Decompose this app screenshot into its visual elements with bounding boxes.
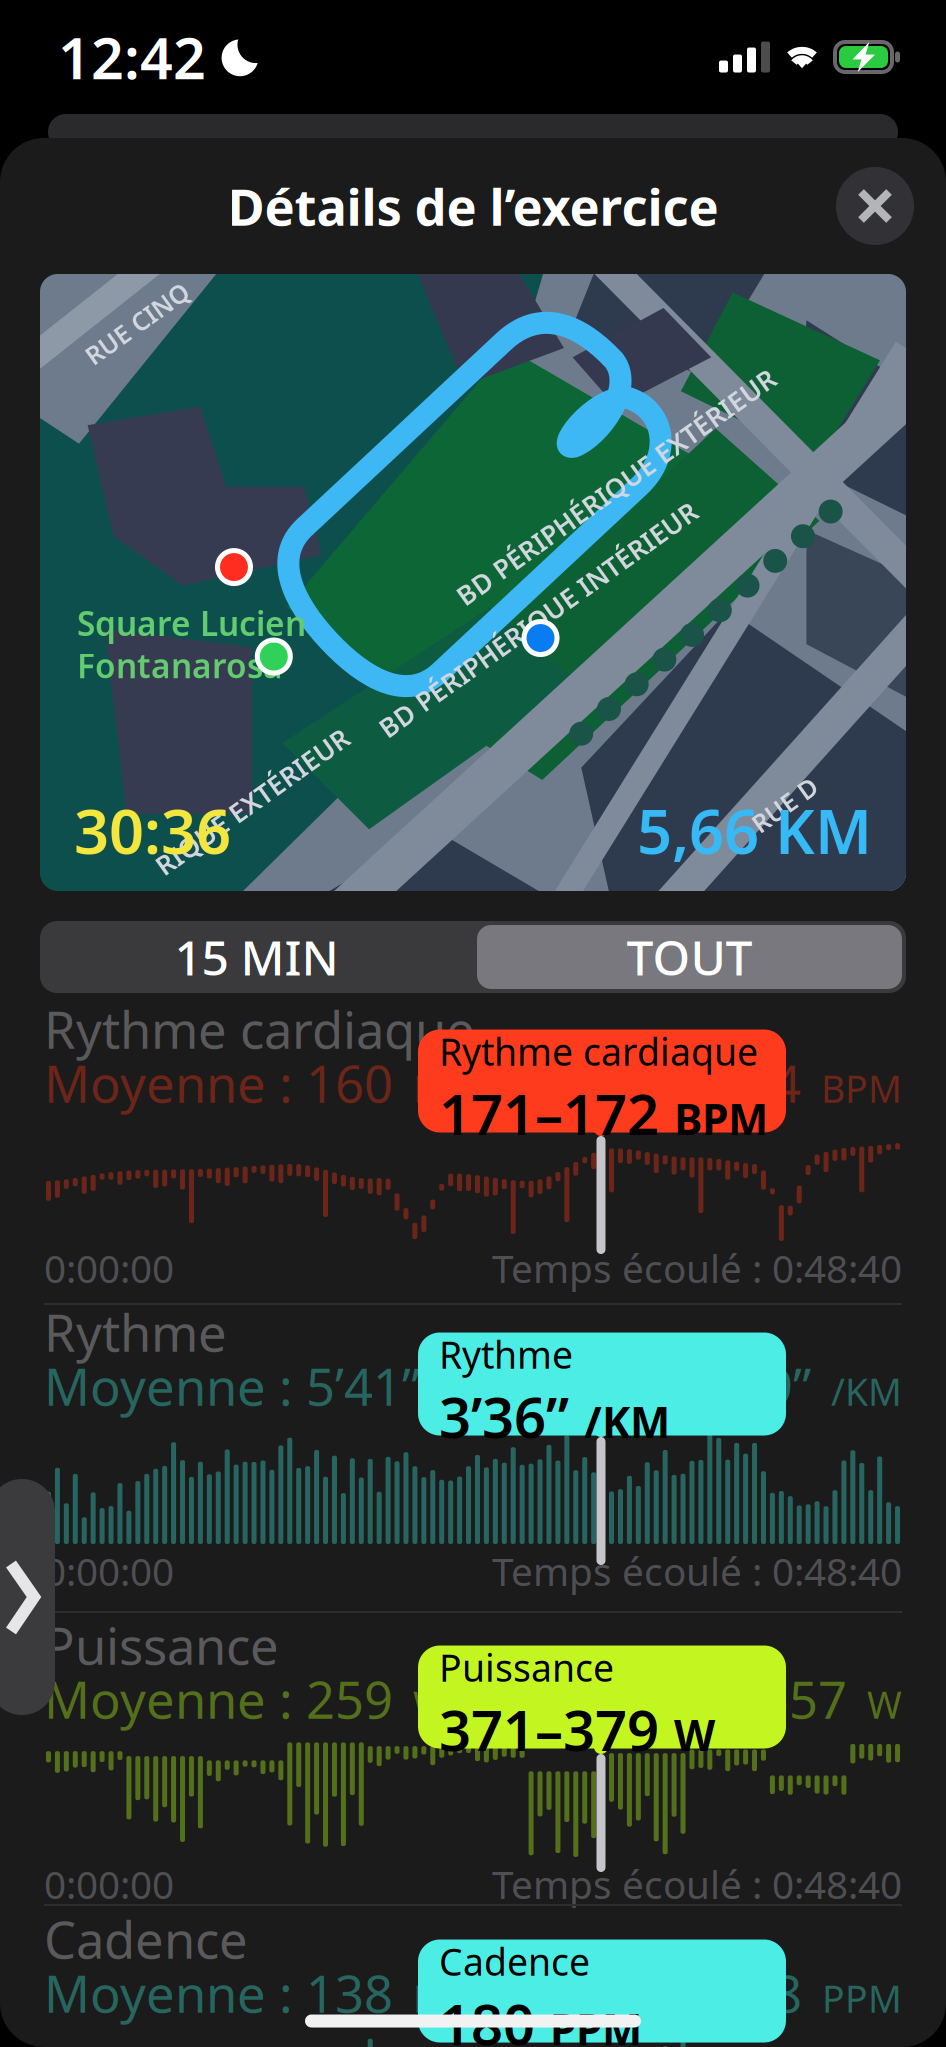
staticText: Moyenne : 5’41”: [44, 1352, 420, 1420]
staticText: 174: [714, 1049, 801, 1117]
staticText: Rythme cardiaque: [44, 995, 475, 1063]
button[interactable]: Fermer: [836, 167, 914, 245]
staticText: RUE D: [747, 788, 822, 821]
staticText: Cadence: [44, 1905, 248, 1973]
staticText: 0:00:00: [44, 1858, 174, 1910]
staticText: PPM: [550, 2000, 642, 2047]
staticText: BPM: [801, 1063, 902, 1113]
staticText: Cadence: [439, 1936, 590, 1986]
staticText: Moyenne : 259: [44, 1665, 393, 1733]
staticText: Rythme: [44, 1298, 227, 1366]
staticText: W: [847, 1679, 902, 1729]
staticText: RIQUE EXTÉRIEUR: [137, 784, 368, 819]
staticText: ’19”: [726, 1352, 811, 1420]
staticText: Square Lucien: [77, 601, 306, 645]
staticText: /KM: [420, 1366, 511, 1416]
staticText: Détails de l’exercice: [227, 172, 718, 240]
staticText: W: [393, 1679, 448, 1729]
staticText: Temps écoulé : 0:48:40: [492, 1858, 902, 1910]
staticText: 371–379: [439, 1692, 659, 1766]
staticText: BPM: [674, 1090, 768, 1147]
staticText: 3’36”: [439, 1379, 569, 1453]
staticText: BPM: [393, 1063, 494, 1113]
staticText: 15 MIN: [174, 925, 338, 989]
staticText: BD PÉRIPHÉRIQUE EXTÉRIEUR: [423, 469, 808, 505]
staticText: –557: [735, 1665, 847, 1733]
staticText: 5,66 KM: [637, 790, 872, 871]
staticText: 171–172: [439, 1076, 659, 1150]
staticText: 12:42: [58, 19, 206, 95]
staticText: 28: [744, 1959, 802, 2027]
staticText: 180: [439, 1986, 535, 2047]
button[interactable]: Ouvrir le panneau: [0, 1479, 55, 1715]
staticText: Fontanarosa: [77, 643, 283, 687]
staticText: /KM: [811, 1366, 902, 1416]
staticText: /KM: [584, 1393, 670, 1450]
staticText: Moyenne : 160: [44, 1049, 393, 1117]
staticText: W: [674, 1706, 715, 1763]
staticText: TOUT: [626, 925, 752, 989]
staticText: Rythme cardiaque: [439, 1026, 758, 1076]
staticText: Temps écoulé : 0:48:40: [492, 1545, 902, 1597]
staticText: 0:00:00: [44, 1545, 174, 1597]
staticText: Puissance: [44, 1611, 279, 1679]
staticText: PPM: [393, 1973, 493, 2023]
staticText: Temps écoulé : 0:48:40: [492, 1242, 902, 1294]
button[interactable]: TOUT: [477, 925, 902, 989]
staticText: Puissance: [439, 1642, 614, 1692]
staticText: RUE CINQ: [76, 306, 197, 340]
staticText: 0:00:00: [44, 1242, 174, 1294]
button[interactable]: 15 MIN: [40, 921, 473, 993]
staticText: Rythme: [439, 1329, 573, 1379]
staticText: Moyenne : 138: [44, 1959, 393, 2027]
staticText: 30:36: [74, 790, 231, 871]
staticText: PPM: [802, 1973, 902, 2023]
staticText: BD PÉRIPHÉRIQUE INTÉRIEUR: [346, 602, 730, 637]
